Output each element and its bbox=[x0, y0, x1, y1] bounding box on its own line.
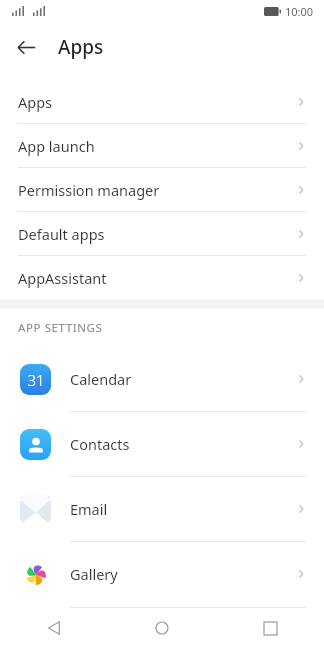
button[interactable]: App launch bbox=[0, 124, 324, 167]
staticText: App launch bbox=[18, 136, 95, 156]
button[interactable]: Recent apps bbox=[216, 608, 324, 648]
staticText: Default apps bbox=[18, 224, 105, 244]
staticText: Gallery bbox=[70, 564, 118, 584]
button[interactable]: Email bbox=[0, 477, 324, 541]
staticText: 31 bbox=[27, 370, 45, 390]
button[interactable]: Back bbox=[8, 29, 44, 65]
button[interactable]: Home bbox=[108, 608, 216, 648]
staticText: 10:00 bbox=[285, 4, 314, 19]
staticText: AppAssistant bbox=[18, 268, 107, 288]
button[interactable]: Permission manager bbox=[0, 168, 324, 211]
button[interactable]: Contacts bbox=[0, 412, 324, 476]
staticText: Apps bbox=[18, 92, 53, 112]
staticText: Calendar bbox=[70, 369, 132, 389]
button[interactable]: Apps bbox=[0, 80, 324, 123]
staticText: Contacts bbox=[70, 434, 130, 454]
staticText: Apps bbox=[58, 34, 104, 60]
button[interactable]: Gallery bbox=[0, 542, 324, 606]
button[interactable]: 31 bbox=[0, 347, 324, 411]
staticText: Email bbox=[70, 499, 108, 519]
staticText: APP SETTINGS bbox=[18, 320, 103, 336]
button[interactable]: Default apps bbox=[0, 212, 324, 255]
button[interactable]: Back bbox=[0, 608, 108, 648]
staticText: Permission manager bbox=[18, 180, 160, 200]
button[interactable]: AppAssistant bbox=[0, 256, 324, 299]
